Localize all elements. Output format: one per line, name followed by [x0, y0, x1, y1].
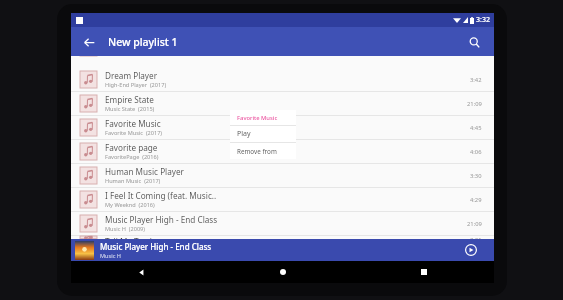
- staticText: 21:09: [467, 220, 482, 228]
- button[interactable]: Play: [462, 241, 480, 259]
- staticText: High-End Player (2017): [105, 81, 167, 89]
- staticText: 3:32: [476, 15, 490, 25]
- button[interactable]: Music Player High - End Class: [71, 239, 494, 261]
- staticText: Tell Me Truth: [105, 236, 155, 239]
- staticText: Music Player High - End Class: [105, 214, 218, 225]
- staticText: Music Player High - End Class: [100, 241, 212, 252]
- button[interactable]: Music Player High - End Class: [71, 212, 494, 235]
- staticText: Music H (2009): [105, 225, 146, 233]
- staticText: 4:29: [470, 196, 482, 204]
- staticText: Human Music (2017): [105, 177, 161, 185]
- staticText: 3:42: [470, 76, 482, 84]
- staticText: 3:30: [470, 172, 482, 180]
- button[interactable]: Recents: [353, 261, 494, 283]
- button[interactable]: Empire State: [71, 92, 494, 115]
- staticText: Favorite page: [105, 142, 158, 153]
- staticText: Human Music Player: [105, 166, 184, 177]
- staticText: 21:09: [467, 100, 482, 108]
- staticText: Music H: [100, 252, 121, 260]
- staticText: I Feel It Coming (feat. Music..: [105, 190, 217, 201]
- button[interactable]: Back: [71, 261, 212, 283]
- staticText: Empire State: [105, 94, 154, 105]
- button[interactable]: Dream Player: [71, 68, 494, 91]
- button[interactable]: I Feel It Coming (feat. Music..: [71, 188, 494, 211]
- button[interactable]: Tell Me Truth: [71, 236, 494, 239]
- staticText: Favorite Music (2017): [105, 129, 163, 137]
- button[interactable]: Remove from playlist: [230, 143, 296, 159]
- staticText: Music State (2015): [105, 105, 155, 113]
- staticText: New playlist 1: [108, 35, 178, 49]
- button[interactable]: Back: [78, 31, 100, 53]
- button[interactable]: Favorite page: [71, 140, 494, 163]
- button[interactable]: Favorite Music: [230, 110, 296, 125]
- button[interactable]: Search: [463, 31, 485, 53]
- button[interactable]: Favorite Music: [71, 116, 494, 139]
- staticText: Favorite Music: [105, 118, 161, 129]
- staticText: 4:45: [470, 124, 482, 132]
- button[interactable]: Home: [212, 261, 353, 283]
- button[interactable]: Human Music Player: [71, 164, 494, 187]
- staticText: Remove from playlist: [237, 147, 296, 156]
- staticText: Favorite Music: [237, 114, 278, 122]
- staticText: Dream Player: [105, 70, 158, 81]
- staticText: Play: [237, 129, 251, 139]
- staticText: My Weeknd (2016): [105, 201, 155, 209]
- button[interactable]: Play: [230, 126, 296, 142]
- staticText: 4:06: [470, 148, 482, 156]
- staticText: 3:31: [470, 236, 482, 239]
- staticText: FavoritePage (2016): [105, 153, 159, 161]
